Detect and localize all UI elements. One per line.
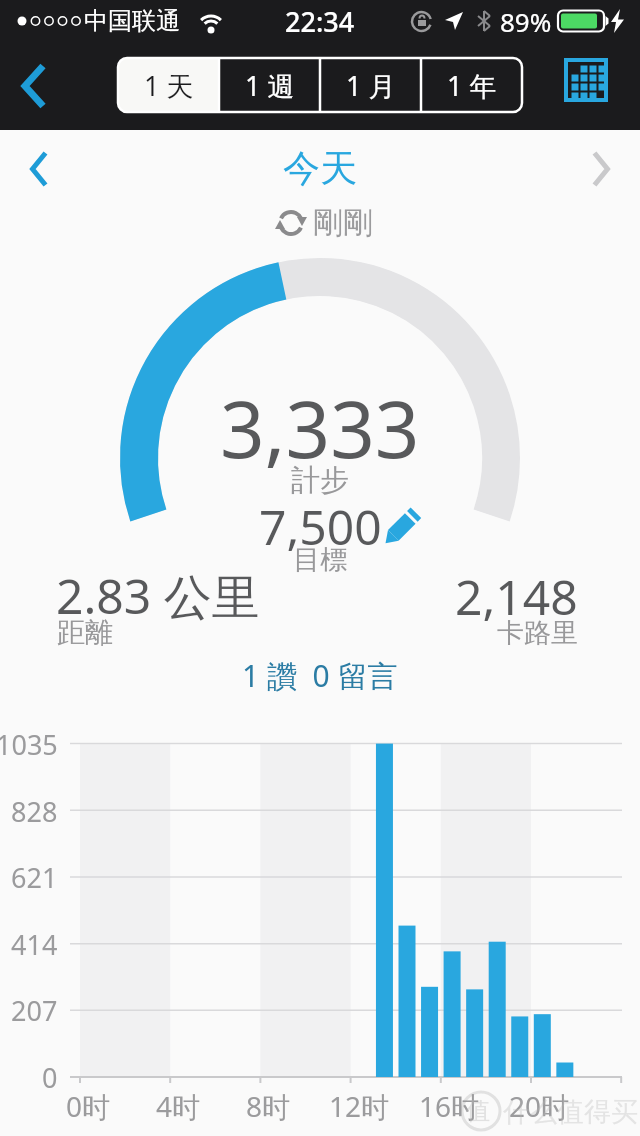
button[interactable]: 1 天 xyxy=(118,58,219,112)
staticText: 今天 xyxy=(283,145,357,192)
staticText: 207 xyxy=(11,992,58,1029)
button[interactable] xyxy=(268,142,372,196)
staticText: 414 xyxy=(11,926,58,963)
staticText: 4时 xyxy=(156,1087,201,1125)
button[interactable] xyxy=(10,62,58,110)
staticText: 0 xyxy=(42,1059,58,1096)
staticText: 目標 xyxy=(293,543,347,577)
staticText: 1035 xyxy=(0,726,58,763)
staticText: 2.83 公里 xyxy=(56,563,260,629)
button[interactable] xyxy=(238,653,402,697)
button[interactable] xyxy=(580,143,620,195)
button[interactable]: 1 年 xyxy=(421,58,522,112)
staticText: 值 xyxy=(466,1096,490,1126)
staticText: 22:34 xyxy=(285,3,355,40)
staticText: 計步 xyxy=(291,462,349,499)
staticText: 20时 xyxy=(509,1087,570,1125)
staticText: 距離 xyxy=(57,615,113,650)
staticText: 828 xyxy=(11,793,58,830)
button[interactable]: 1 週 xyxy=(219,58,320,112)
staticText: 7,500 xyxy=(259,494,382,559)
staticText: 8时 xyxy=(246,1087,291,1125)
staticText: 89% xyxy=(500,4,552,39)
staticText: 12时 xyxy=(329,1087,390,1125)
staticText: 剛剛 xyxy=(313,204,373,242)
staticText: 什么值得买 xyxy=(503,1095,638,1129)
staticText: 0时 xyxy=(66,1087,111,1125)
staticText: 中国联通 xyxy=(84,6,180,36)
staticText: 621 xyxy=(11,859,58,896)
staticText: 卡路里 xyxy=(497,616,578,650)
staticText: 1 週 xyxy=(245,67,295,104)
button[interactable] xyxy=(272,204,382,242)
staticText: 2,148 xyxy=(455,564,578,629)
button[interactable]: 1 月 xyxy=(320,58,421,112)
staticText: 1 讚 0 留言 xyxy=(242,655,398,696)
button[interactable] xyxy=(22,143,64,195)
staticText: 1 年 xyxy=(447,67,497,104)
button[interactable] xyxy=(558,52,614,108)
staticText: 1 天 xyxy=(144,67,194,104)
staticText: 16时 xyxy=(419,1087,480,1125)
staticText: 1 月 xyxy=(346,67,396,104)
button[interactable] xyxy=(374,502,424,552)
staticText: 3,333 xyxy=(220,375,420,481)
